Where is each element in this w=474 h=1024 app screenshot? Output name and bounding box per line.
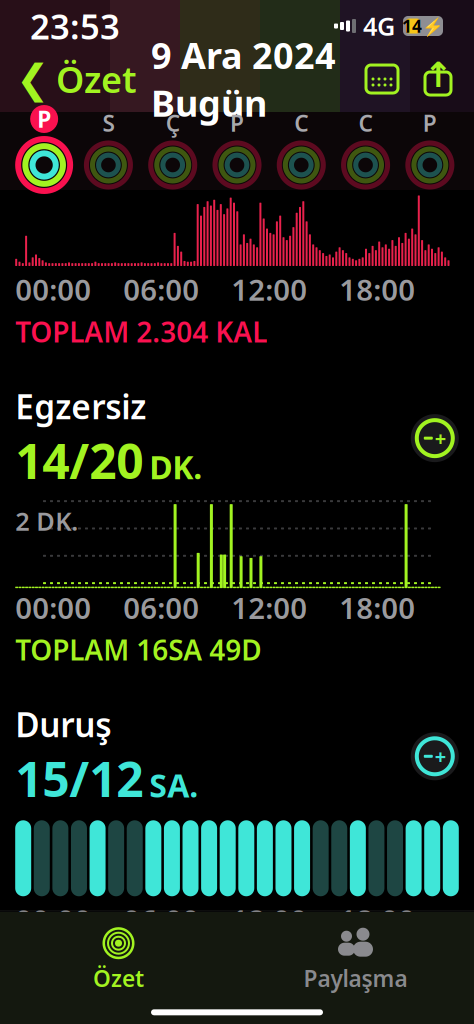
button[interactable]: Takvim [362,59,402,99]
staticText: 00:00 [15,588,91,627]
button[interactable]: P [398,109,462,187]
staticText: TOPLAM 2.304 KAL [15,313,267,350]
button[interactable]: C [333,109,398,187]
staticText: DK. [149,446,202,488]
button[interactable]: P [12,105,76,191]
staticText: SA. [149,764,198,806]
button[interactable]: S [76,109,141,187]
staticText: ❮ [16,56,50,102]
staticText: Özet [93,963,144,993]
staticText: 06:00 [123,588,199,627]
button[interactable]: Özet [0,919,237,1001]
staticText: Paylaşma [303,963,407,993]
staticText: Duruş [15,702,111,747]
button[interactable]: Egzersiz hedefi [411,414,459,462]
button[interactable]: Duruş hedefi [411,732,459,780]
staticText: Mesafe [195,1010,314,1024]
staticText: C [294,108,308,138]
staticText: 06:00 [123,900,199,939]
staticText: C [359,108,373,138]
staticText: + [435,743,446,770]
staticText: 18:00 [339,588,415,627]
staticText: 18:00 [339,900,415,939]
button[interactable]: P [205,109,269,187]
staticText: 9 Ara 2024 Bugün [151,31,336,127]
button[interactable]: ❮ [16,49,137,109]
staticText: 14/20 [15,428,143,492]
staticText: 23:53 [30,3,120,49]
staticText: 00:00 [15,270,91,309]
staticText: 4G [363,9,395,43]
staticText: P [423,108,437,138]
staticText: 15/12 [15,746,143,810]
staticText: 14⚡ [402,14,444,37]
staticText: 12:00 [231,588,307,627]
staticText: Ç [166,108,180,138]
staticText: 00:00 [15,900,91,939]
staticText: S [102,108,114,138]
staticText: Özet [56,55,137,103]
button[interactable]: C [269,109,333,187]
staticText: 18:00 [339,270,415,309]
button[interactable]: Ç [141,109,205,187]
staticText: P [230,108,244,138]
button[interactable]: Paylaşma [237,919,474,1001]
staticText: 12:00 [231,900,307,939]
staticText: Egzersiz [15,384,146,428]
staticText: 12:00 [231,270,307,309]
staticText: + [435,425,446,451]
staticText: P [37,104,51,134]
staticText: 2 DK. [15,504,78,538]
staticText: 9 HAREKETSİZ GEÇEN SAAT [15,943,376,980]
staticText: TOPLAM 16SA 49D [15,631,261,668]
staticText: 06:00 [123,270,199,309]
staticText: ↑ [423,55,452,95]
button[interactable]: Paylaş [418,59,458,99]
